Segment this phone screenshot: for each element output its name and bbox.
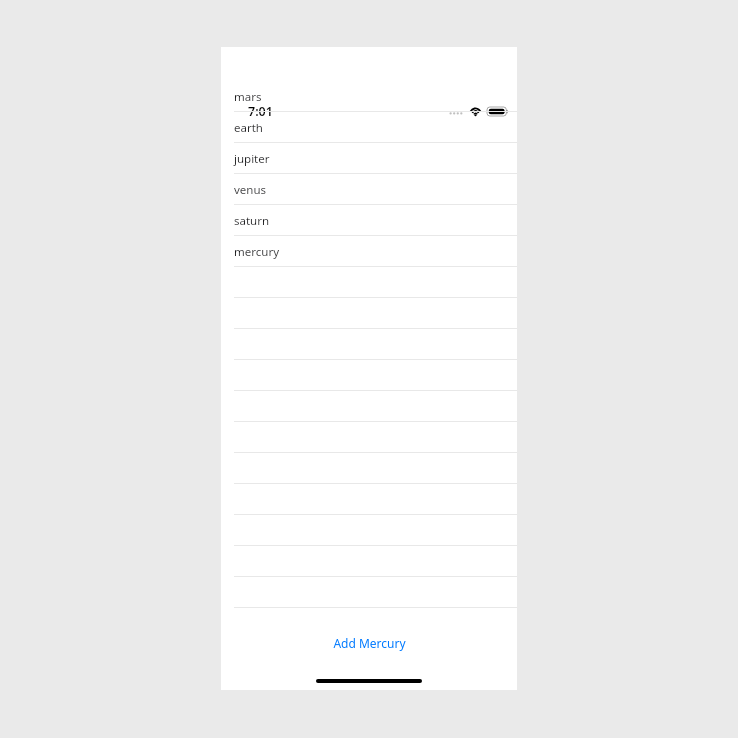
button[interactable]: venus — [221, 174, 517, 205]
button[interactable]: mercury — [221, 236, 517, 267]
button[interactable]: mars — [221, 81, 517, 112]
staticText: mercury — [234, 244, 279, 260]
staticText: earth — [234, 120, 263, 136]
staticText: 7:01 — [248, 103, 273, 119]
button[interactable]: earth — [221, 112, 517, 143]
button[interactable]: saturn — [221, 205, 517, 236]
button[interactable]: Add Mercury — [221, 627, 517, 659]
staticText: venus — [234, 182, 267, 198]
staticText: mars — [234, 89, 262, 105]
staticText: jupiter — [234, 151, 270, 167]
staticText: saturn — [234, 213, 270, 229]
button[interactable]: jupiter — [221, 143, 517, 174]
staticText: Add Mercury — [333, 635, 406, 651]
